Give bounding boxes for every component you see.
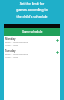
- button[interactable]: Monday: [4, 37, 60, 47]
- staticText: Tuesday: [5, 49, 16, 53]
- button[interactable]: Add interval: [54, 37, 60, 43]
- button[interactable]: Tuesday: [4, 49, 60, 59]
- staticText: Set the limit for games according to the…: [0, 1, 64, 19]
- staticText: 08:00 - 10:00 free time: [5, 53, 28, 56]
- staticText: Game schedule: [22, 30, 43, 34]
- staticText: Monday: [5, 37, 16, 41]
- staticText: 12:00 - 14:00: [5, 44, 19, 47]
- staticText: 08:00 - 10:00 free time: [5, 41, 28, 44]
- button[interactable]: Add interval: [54, 49, 60, 55]
- staticText: 12:00 - 14:00: [5, 56, 19, 59]
